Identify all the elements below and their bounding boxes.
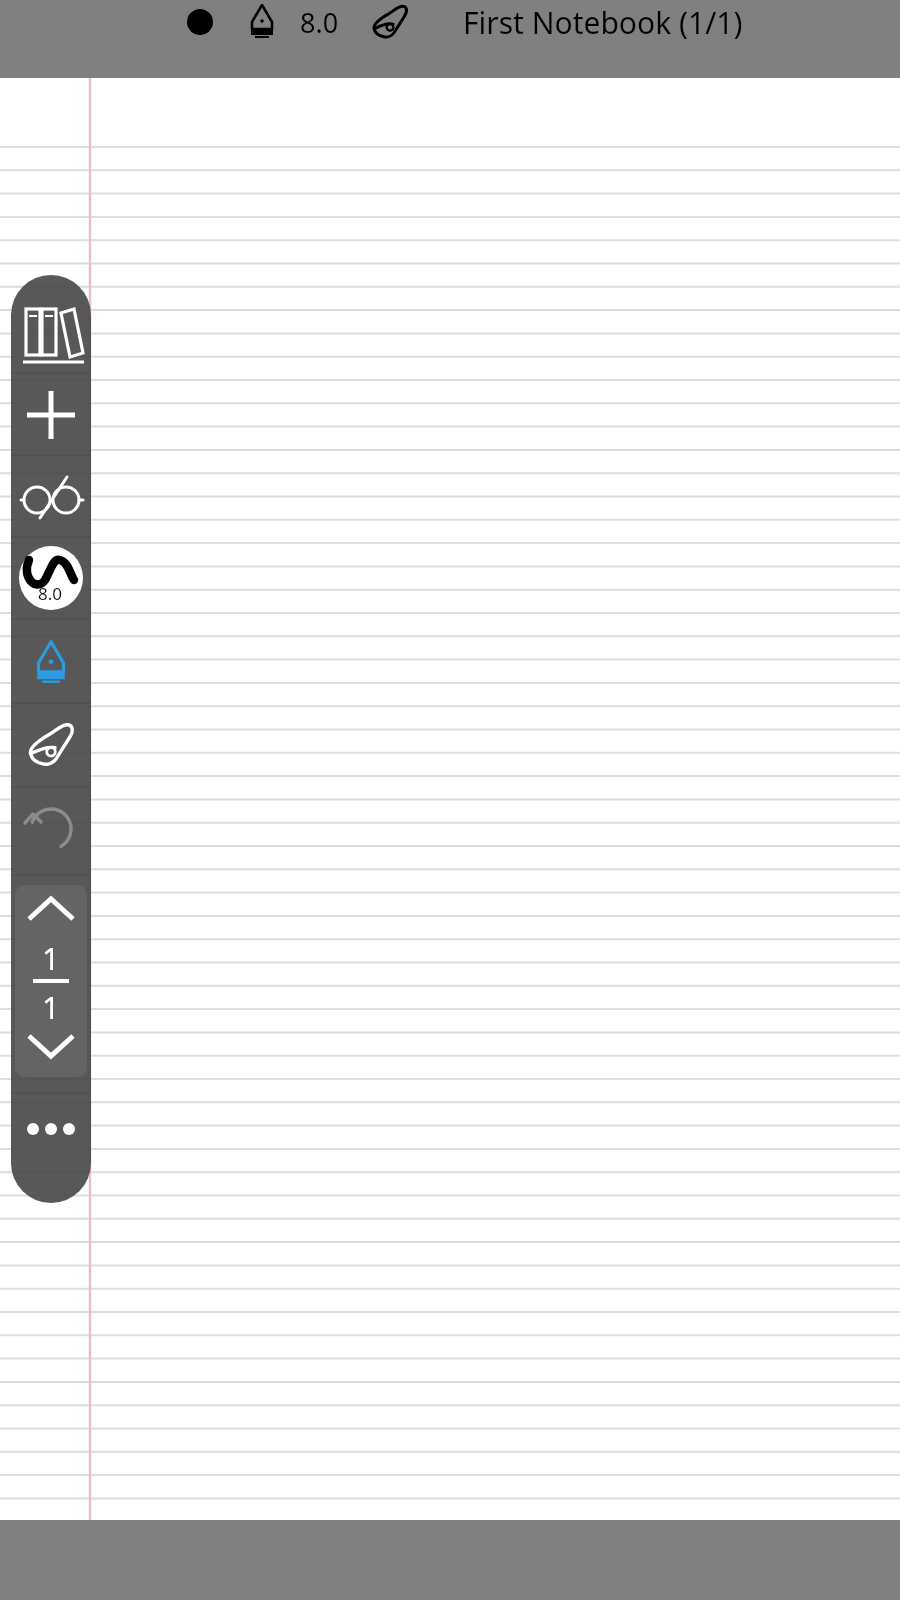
button[interactable]: Previous page (15, 885, 87, 949)
button[interactable]: Next page (15, 1013, 87, 1077)
staticText: 1 (42, 986, 60, 1028)
staticText: 8.0 (38, 582, 63, 605)
button[interactable]: Undo (11, 789, 91, 869)
staticText: 8.0 (300, 4, 339, 41)
button[interactable]: New page (11, 375, 91, 455)
button[interactable]: Pen (11, 623, 91, 703)
button[interactable]: Select (11, 457, 91, 537)
button[interactable]: Stroke width 8.0 (11, 539, 91, 619)
staticText: 1 (42, 937, 60, 979)
button[interactable]: Hand tool (11, 705, 91, 785)
button[interactable]: More options (11, 1095, 91, 1165)
button[interactable]: First Notebook (1/1) (463, 2, 743, 43)
button[interactable]: Notebooks (11, 293, 91, 373)
